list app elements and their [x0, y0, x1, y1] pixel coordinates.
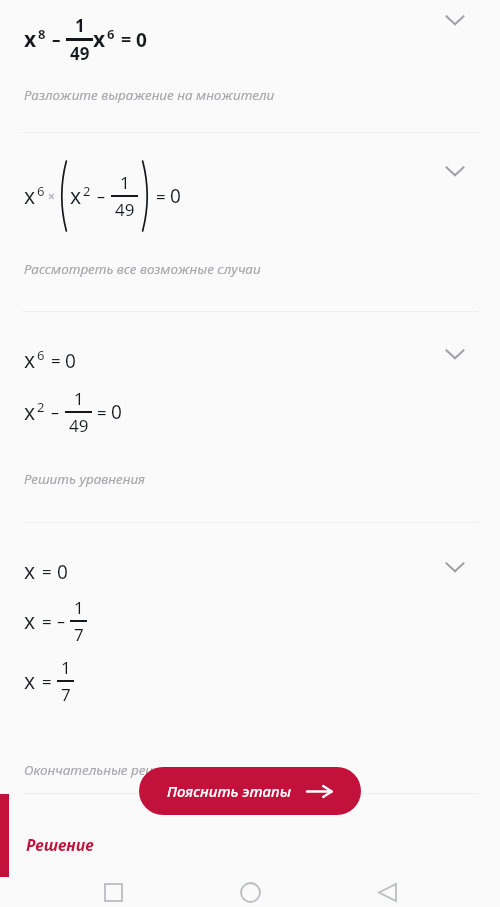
button[interactable]: x [0, 0, 500, 132]
button[interactable]: x [0, 523, 500, 793]
button[interactable]: x [0, 133, 500, 311]
staticText: 0 [65, 348, 76, 374]
staticText: 2 [37, 398, 45, 416]
staticText: 0 [57, 559, 68, 585]
staticText: – [97, 185, 106, 207]
staticText: x [24, 607, 36, 636]
staticText: Решить уравнения [24, 470, 145, 488]
staticText: 7 [74, 623, 84, 646]
staticText: 0 [111, 399, 122, 425]
staticText: 49 [69, 414, 89, 437]
staticText: x [24, 182, 36, 211]
staticText: 6 [37, 346, 45, 364]
staticText: – [57, 610, 66, 632]
staticText: Окончательные решения [24, 761, 186, 779]
staticText: 49 [70, 42, 90, 65]
button[interactable]: Home [226, 877, 274, 907]
button[interactable]: x [0, 312, 500, 522]
staticText: 2 [83, 182, 91, 200]
staticText: 1 [75, 14, 85, 37]
staticText: 1 [61, 656, 71, 679]
staticText: = [42, 560, 52, 583]
button[interactable]: Back [363, 877, 411, 907]
staticText: 1 [74, 596, 84, 619]
staticText: – [52, 28, 61, 51]
staticText: × [48, 188, 55, 204]
button[interactable]: Expand step [435, 547, 475, 587]
staticText: x [93, 25, 106, 54]
staticText: x [70, 182, 82, 211]
staticText: 1 [120, 171, 130, 194]
staticText: 0 [170, 183, 181, 209]
staticText: Разложите выражение на множители [24, 86, 275, 104]
staticText: Рассмотреть все возможные случаи [24, 260, 261, 278]
button[interactable]: Expand step [435, 334, 475, 374]
button[interactable]: Пояснить этапы [139, 767, 361, 815]
staticText: – [51, 401, 60, 423]
staticText: 1 [74, 387, 84, 410]
staticText: 7 [61, 683, 71, 706]
staticText: = [121, 27, 132, 52]
staticText: = [42, 670, 52, 693]
staticText: Решение [26, 834, 94, 856]
staticText: = [42, 610, 52, 633]
staticText: x [24, 25, 37, 54]
staticText: = [156, 185, 166, 208]
staticText: x [24, 398, 36, 427]
staticText: 8 [38, 25, 46, 43]
staticText: 49 [115, 198, 135, 221]
staticText: Пояснить этапы [167, 781, 291, 801]
staticText: x [24, 667, 36, 696]
button[interactable]: Recent apps [89, 877, 137, 907]
staticText: = [51, 349, 61, 372]
staticText: 6 [107, 25, 115, 43]
button[interactable]: Expand step [435, 151, 475, 191]
staticText: 0 [136, 27, 147, 53]
staticText: x [24, 557, 36, 586]
staticText: x [24, 346, 36, 375]
staticText: = [97, 401, 107, 424]
button[interactable]: Expand step [435, 0, 475, 40]
staticText: 6 [37, 182, 45, 200]
